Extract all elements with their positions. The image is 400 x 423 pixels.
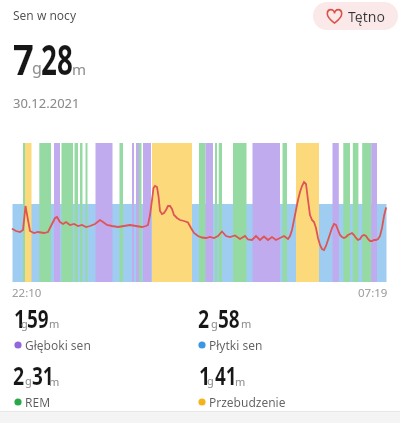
button[interactable]: Głęboki sen (8, 334, 74, 356)
staticText: 31 (32, 358, 54, 392)
staticText: m (49, 316, 60, 331)
staticText: g (207, 373, 214, 388)
staticText: g (32, 57, 42, 79)
button[interactable]: Przebudzenie (192, 391, 269, 413)
staticText: 07:19 (358, 285, 388, 301)
staticText: Przebudzenie (209, 394, 286, 410)
staticText: REM (25, 394, 51, 410)
staticText: m (72, 59, 87, 79)
staticText: m (49, 374, 60, 389)
staticText: 41 (215, 358, 237, 392)
staticText: 2 (198, 301, 210, 335)
staticText: 22:10 (12, 285, 42, 301)
staticText: g (21, 316, 28, 331)
staticText: m (235, 374, 246, 389)
staticText: Tętno (348, 7, 385, 26)
button[interactable]: REM (8, 391, 34, 413)
staticText: g (25, 373, 32, 388)
staticText: 7 (13, 31, 34, 88)
staticText: 58 (218, 301, 240, 335)
staticText: 1 (14, 301, 26, 335)
staticText: 59 (27, 301, 49, 335)
staticText: m (241, 316, 252, 331)
staticText: g (211, 316, 218, 331)
staticText: 2 (13, 358, 25, 392)
button[interactable]: Płytki sen (192, 334, 246, 356)
staticText: Płytki sen (209, 337, 263, 353)
staticText: Sen w nocy (13, 7, 77, 23)
staticText: 30.12.2021 (13, 94, 80, 112)
staticText: 1 (199, 358, 211, 392)
staticText: 28 (41, 31, 73, 88)
button[interactable]: Tętno (313, 2, 398, 30)
staticText: Głęboki sen (25, 337, 91, 353)
